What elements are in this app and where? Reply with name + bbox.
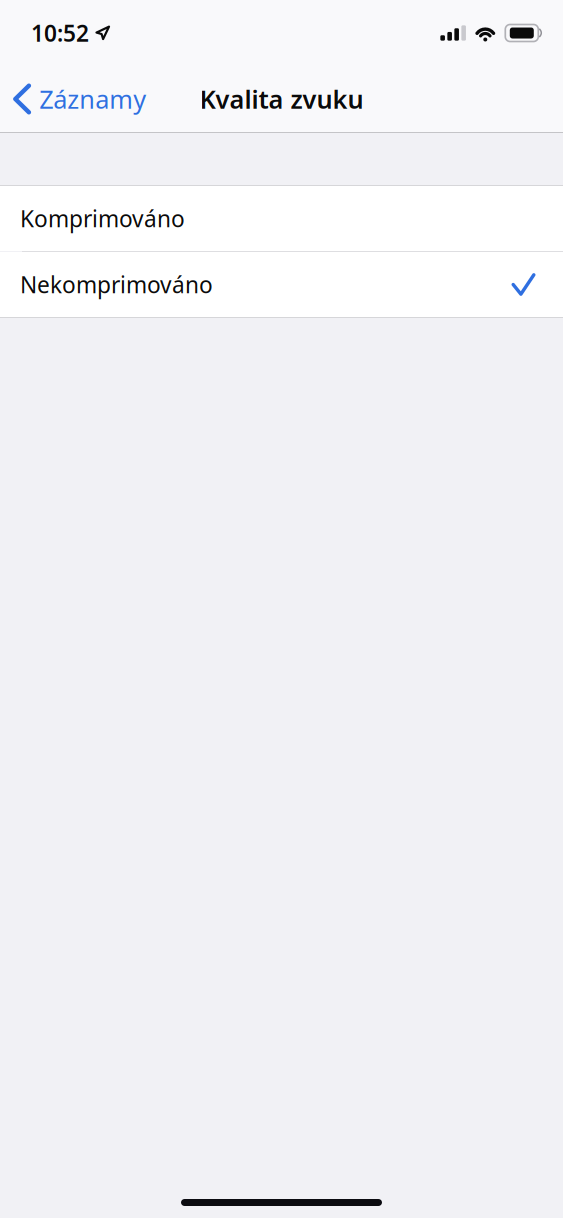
staticText: Záznamy	[39, 82, 146, 116]
button[interactable]: Komprimováno	[0, 186, 563, 251]
button[interactable]: Nekomprimováno	[0, 252, 563, 317]
staticText: Komprimováno	[20, 203, 185, 233]
staticText: 10:52	[31, 18, 89, 48]
button[interactable]: Back to Záznamy	[0, 73, 160, 125]
staticText: Nekomprimováno	[20, 269, 213, 299]
staticText: Kvalita zvuku	[199, 82, 363, 116]
